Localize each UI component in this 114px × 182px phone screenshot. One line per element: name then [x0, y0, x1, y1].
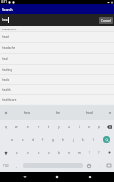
staticText: w: [15, 125, 18, 129]
button[interactable]: ?: [94, 146, 104, 159]
button[interactable]: w: [11, 120, 22, 133]
staticText: healthcare: [2, 98, 17, 102]
staticText: h: [62, 138, 64, 142]
button[interactable]: o: [84, 120, 94, 133]
staticText: n: [68, 151, 70, 155]
button[interactable]: n: [64, 146, 74, 159]
button[interactable]: f: [38, 133, 48, 146]
staticText: i: [79, 125, 80, 129]
staticText: heal: [86, 110, 93, 115]
staticText: x: [27, 151, 29, 155]
button[interactable]: ?123: [0, 159, 11, 172]
button[interactable]: j: [68, 133, 78, 146]
staticText: p: [98, 125, 100, 129]
staticText: r: [38, 125, 40, 129]
button[interactable]: h: [58, 133, 68, 146]
staticText: 3:11: [1, 0, 7, 4]
staticText: !: [89, 151, 90, 155]
staticText: c: [38, 151, 40, 155]
staticText: healing: [2, 68, 13, 72]
button[interactable]: Backspace: [104, 120, 114, 133]
button[interactable]: x: [22, 146, 33, 159]
staticText: health: [2, 88, 11, 92]
staticText: .: [99, 164, 100, 168]
button[interactable]: !: [84, 146, 94, 159]
staticText: Suggestions:: [2, 27, 17, 30]
button[interactable]: k: [78, 133, 88, 146]
button[interactable]: heal: [0, 54, 114, 64]
button[interactable]: heals: [0, 75, 114, 84]
button[interactable]: healthcare: [0, 95, 114, 104]
button[interactable]: v: [44, 146, 54, 159]
staticText: g: [52, 138, 54, 142]
staticText: v: [48, 151, 50, 155]
button[interactable]: b: [54, 146, 64, 159]
staticText: k: [82, 138, 84, 142]
button[interactable]: y: [54, 120, 64, 133]
staticText: head: [2, 35, 9, 39]
button[interactable]: Delete: [104, 146, 114, 159]
button[interactable]: head: [0, 32, 114, 42]
staticText: u: [68, 125, 70, 129]
button[interactable]: m: [74, 146, 84, 159]
staticText: a: [11, 138, 13, 142]
staticText: heal: [2, 57, 8, 61]
staticText: headache: [2, 46, 16, 50]
button[interactable]: g: [48, 133, 58, 146]
button[interactable]: t: [44, 120, 54, 133]
button[interactable]: Cancel: [99, 17, 113, 24]
button[interactable]: heal: [74, 105, 105, 120]
button[interactable]: d: [28, 133, 38, 146]
button[interactable]: l: [88, 133, 98, 146]
button[interactable]: z: [11, 146, 22, 159]
staticText: f: [42, 138, 44, 142]
staticText: l: [93, 138, 94, 142]
staticText: ?123: [3, 164, 9, 168]
button[interactable]: Recent apps: [82, 172, 98, 182]
staticText: e: [27, 125, 29, 129]
button[interactable]: Expand suggestions: [105, 105, 114, 120]
staticText: Cancel: [101, 19, 111, 23]
staticText: hea: [2, 18, 8, 22]
staticText: hea: [24, 110, 30, 115]
staticText: y: [58, 125, 60, 129]
button[interactable]: Back: [17, 172, 33, 182]
button[interactable]: health: [0, 85, 114, 94]
button[interactable]: Emoji: [84, 159, 94, 172]
staticText: j: [73, 138, 74, 142]
staticText: heals: [2, 78, 10, 82]
button[interactable]: he: [43, 105, 74, 120]
button[interactable]: hea: [11, 105, 43, 120]
button[interactable]: u: [64, 120, 74, 133]
staticText: q: [5, 125, 7, 129]
button[interactable]: Search: [98, 133, 114, 146]
button[interactable]: Home: [49, 172, 65, 182]
staticText: ?: [98, 151, 100, 155]
staticText: Search: [2, 7, 13, 11]
button[interactable]: e: [22, 120, 33, 133]
staticText: b: [58, 151, 60, 155]
button[interactable]: Input method: [104, 159, 114, 172]
staticText: he: [56, 110, 61, 115]
button[interactable]: q: [0, 120, 11, 133]
button[interactable]: i: [74, 120, 84, 133]
button[interactable]: p: [94, 120, 104, 133]
button[interactable]: Voice: [0, 105, 11, 120]
button[interactable]: healing: [0, 65, 114, 74]
staticText: s: [22, 138, 24, 142]
staticText: d: [32, 138, 34, 142]
button[interactable]: headache: [0, 43, 114, 53]
button[interactable]: Shift: [0, 146, 11, 159]
staticText: m: [78, 151, 81, 155]
button[interactable]: a: [6, 133, 17, 146]
staticText: ,: [16, 164, 17, 168]
staticText: o: [88, 125, 90, 129]
staticText: z: [16, 151, 18, 155]
button[interactable]: c: [33, 146, 44, 159]
staticText: t: [48, 125, 50, 129]
button[interactable]: r: [33, 120, 44, 133]
button[interactable]: s: [17, 133, 28, 146]
